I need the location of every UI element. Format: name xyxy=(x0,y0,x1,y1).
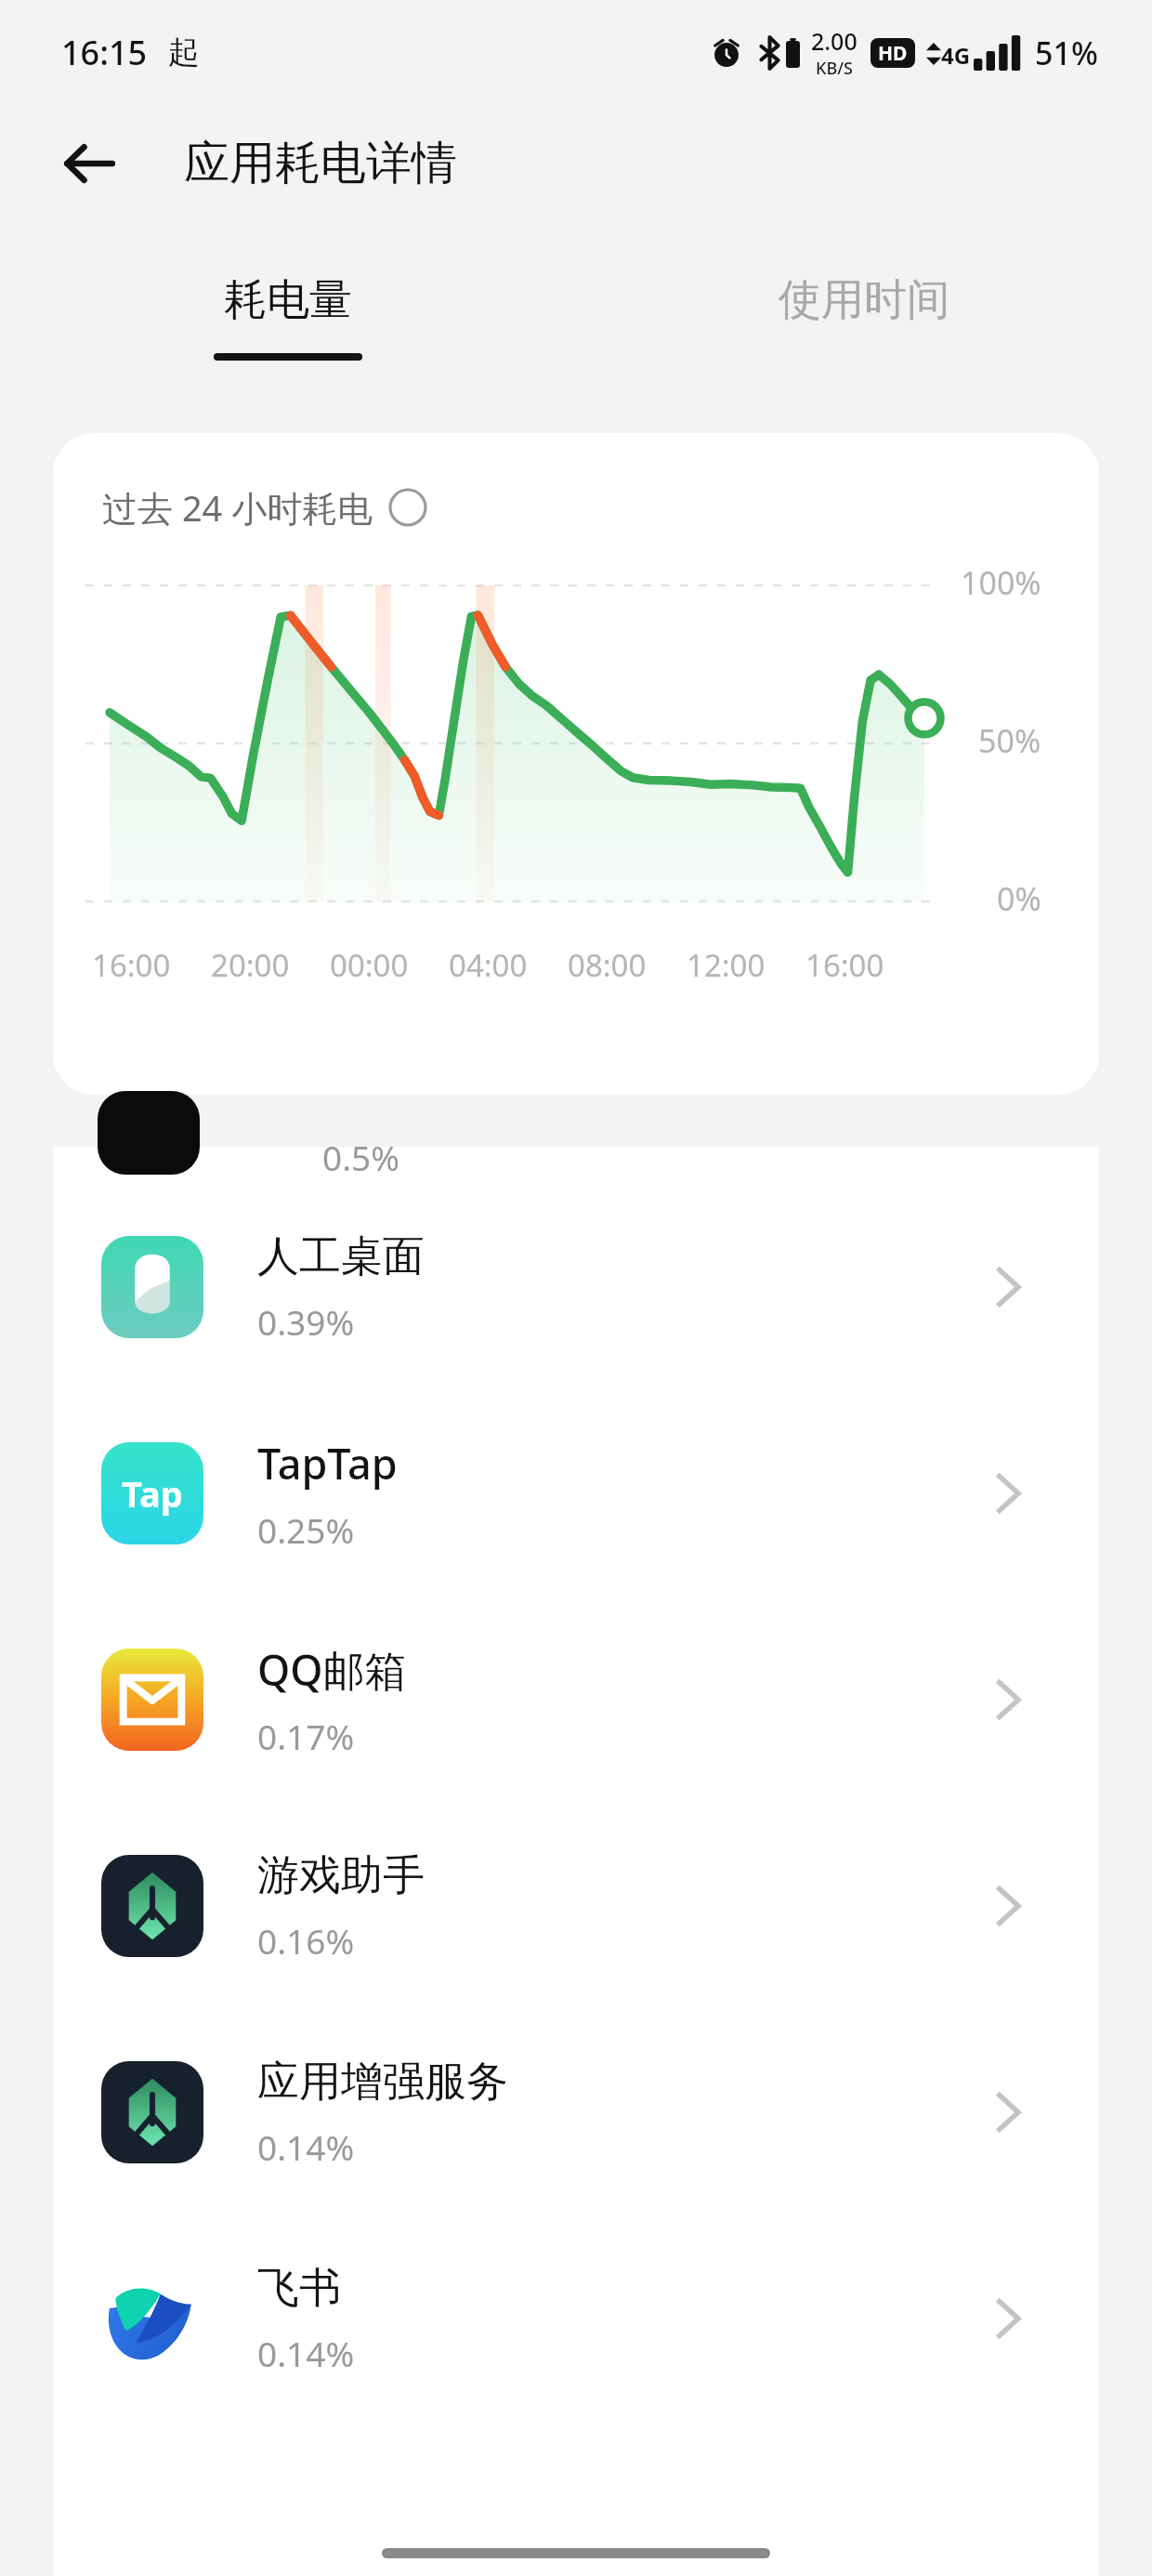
staticText: HD xyxy=(878,40,908,67)
staticText: 应用耗电详情 xyxy=(184,135,457,192)
staticText: 51% xyxy=(1035,32,1098,74)
button[interactable]: 耗电量 xyxy=(0,223,576,390)
button[interactable]: 应用增强服务 xyxy=(53,2009,1099,2215)
staticText: 50% xyxy=(978,719,1041,762)
staticText: 16:00 xyxy=(805,944,884,986)
button[interactable]: 0.5% xyxy=(53,1147,1099,1184)
staticText: 0.14% xyxy=(257,2123,355,2170)
staticText: 0.16% xyxy=(257,1917,355,1964)
staticText: 2.00 xyxy=(811,25,857,57)
button[interactable]: Back xyxy=(45,119,134,208)
staticText: 飞书 xyxy=(257,2262,341,2315)
button[interactable]: 过去 24 小时耗电 xyxy=(102,483,427,532)
staticText: 0% xyxy=(997,877,1041,920)
staticText: 12:00 xyxy=(687,944,766,986)
staticText: TapTap xyxy=(257,1435,398,1492)
staticText: 过去 24 小时耗电 xyxy=(102,483,373,532)
staticText: 起 xyxy=(168,33,200,72)
button[interactable]: Tap xyxy=(53,1390,1099,1597)
staticText: 0.39% xyxy=(257,1298,355,1345)
staticText: 00:00 xyxy=(330,944,409,986)
staticText: Tap xyxy=(122,1469,183,1518)
staticText: 使用时间 xyxy=(779,273,949,327)
staticText: 0.25% xyxy=(257,1506,355,1553)
staticText: 16:15 xyxy=(61,30,148,75)
staticText: 游戏助手 xyxy=(257,1849,425,1902)
button[interactable]: 使用时间 xyxy=(576,223,1152,390)
button[interactable]: 人工桌面 xyxy=(53,1184,1099,1390)
staticText: 应用增强服务 xyxy=(257,2056,508,2109)
other: Help xyxy=(388,488,427,527)
staticText: 0.5% xyxy=(322,1134,399,1171)
staticText: 08:00 xyxy=(568,944,647,986)
staticText: 4G xyxy=(941,40,971,71)
staticText: 20:00 xyxy=(211,944,290,986)
button[interactable]: 游戏助手 xyxy=(53,1803,1099,2009)
button[interactable]: 飞书 xyxy=(53,2215,1099,2422)
staticText: KB/S xyxy=(816,57,853,80)
staticText: QQ邮箱 xyxy=(257,1641,407,1698)
staticText: 100% xyxy=(961,561,1041,604)
button[interactable]: QQ邮箱 xyxy=(53,1597,1099,1803)
staticText: 耗电量 xyxy=(224,273,352,327)
staticText: 人工桌面 xyxy=(257,1230,425,1283)
staticText: 0.14% xyxy=(257,2330,355,2376)
staticText: 04:00 xyxy=(449,944,528,986)
staticText: 16:00 xyxy=(92,944,171,986)
staticText: 0.17% xyxy=(257,1713,355,1759)
